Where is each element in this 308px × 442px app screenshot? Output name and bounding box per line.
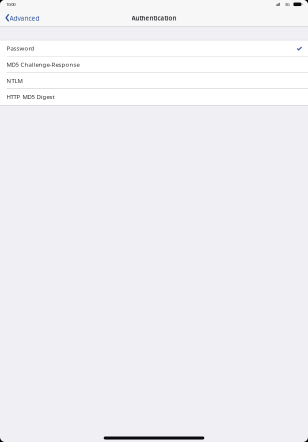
staticText: HTTP MD5 Digest: [6, 93, 54, 101]
staticText: Password: [6, 44, 34, 52]
button[interactable]: Password: [0, 40, 308, 57]
button[interactable]: MD5 Challenge-Response: [0, 57, 308, 73]
button[interactable]: NTLM: [0, 73, 308, 89]
staticText: MD5 Challenge-Response: [6, 60, 79, 68]
button[interactable]: HTTP MD5 Digest: [0, 89, 308, 105]
staticText: NTLM: [6, 77, 22, 85]
staticText: Advanced: [9, 14, 39, 23]
staticText: 10:00: [6, 1, 15, 7]
button[interactable]: Advanced: [0, 11, 42, 24]
staticText: Authentication: [131, 14, 176, 22]
staticText: 3G: [285, 1, 290, 7]
